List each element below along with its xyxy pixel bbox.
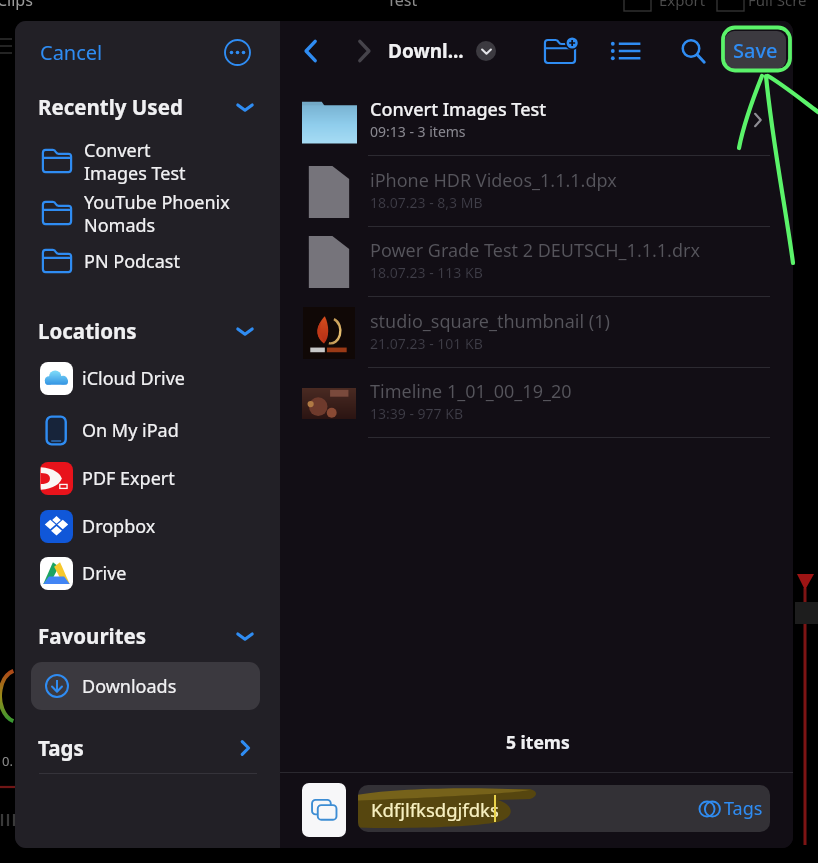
staticText: 18.07.23 - 8,3 MB bbox=[370, 193, 483, 212]
staticText: Tags bbox=[38, 734, 84, 762]
staticText: Downloads bbox=[82, 674, 177, 699]
staticText: PDF Expert bbox=[82, 466, 175, 491]
button[interactable]: iPhone HDR Videos_1.1.1.dpx bbox=[280, 157, 793, 227]
button[interactable]: Downloads bbox=[31, 662, 260, 710]
button[interactable]: New folder bbox=[539, 30, 581, 72]
button[interactable]: Convert Images Test bbox=[15, 136, 280, 186]
staticText: 0. bbox=[2, 752, 13, 770]
staticText: Drive bbox=[82, 561, 127, 586]
staticText: 13:39 - 977 KB bbox=[370, 404, 464, 423]
staticText: iCloud Drive bbox=[82, 366, 185, 391]
button[interactable]: Save bbox=[725, 31, 786, 69]
staticText: Kdfjlfksdgjfdks bbox=[371, 797, 499, 822]
staticText: Full Scre bbox=[748, 0, 807, 10]
staticText: iPhone HDR Videos_1.1.1.dpx bbox=[370, 168, 617, 193]
button[interactable]: iCloud Drive bbox=[15, 357, 280, 399]
button[interactable]: Favourites bbox=[15, 615, 280, 657]
button[interactable]: Cancel bbox=[35, 35, 108, 69]
staticText: Power Grade Test 2 DEUTSCH_1.1.1.drx bbox=[370, 238, 700, 263]
button[interactable]: Timeline 1_01_00_19_20 bbox=[280, 368, 793, 438]
staticText: PN Podcast bbox=[84, 249, 180, 274]
staticText: YouTube Phoenix Nomads bbox=[84, 190, 230, 237]
button[interactable]: Forward bbox=[344, 31, 384, 71]
button[interactable]: Back bbox=[290, 31, 330, 71]
button[interactable]: Search bbox=[672, 30, 714, 72]
staticText: Favourites bbox=[38, 622, 147, 650]
staticText: Recently Used bbox=[38, 93, 183, 121]
staticText: Test bbox=[387, 0, 418, 11]
staticText: Tags bbox=[724, 796, 763, 821]
button[interactable]: Duplicate bbox=[302, 783, 346, 837]
staticText: Locations bbox=[38, 317, 137, 345]
staticText: 18.07.23 - 113 KB bbox=[370, 263, 483, 282]
staticText: Save bbox=[733, 37, 778, 64]
button[interactable]: Recently Used bbox=[15, 86, 280, 128]
staticText: 09:13 - 3 items bbox=[370, 122, 466, 141]
staticText: Export bbox=[659, 0, 706, 10]
button[interactable]: On My iPad bbox=[15, 409, 280, 451]
button[interactable]: Dropbox bbox=[15, 505, 280, 547]
staticText: Timeline 1_01_00_19_20 bbox=[370, 379, 572, 404]
button[interactable]: Power Grade Test 2 DEUTSCH_1.1.1.drx bbox=[280, 227, 793, 297]
button[interactable]: List view bbox=[605, 30, 647, 72]
button[interactable]: Convert Images Test bbox=[280, 86, 793, 156]
staticText: On My iPad bbox=[82, 418, 179, 443]
button[interactable]: PDF Expert bbox=[15, 457, 280, 499]
button[interactable]: Drive bbox=[15, 552, 280, 594]
button[interactable]: YouTube Phoenix Nomads bbox=[15, 188, 280, 238]
staticText: Clips bbox=[0, 0, 33, 11]
staticText: Dropbox bbox=[82, 514, 156, 539]
button[interactable]: Folder options bbox=[476, 41, 496, 61]
staticText: studio_square_thumbnail (1) bbox=[370, 309, 610, 334]
button[interactable]: studio_square_thumbnail (1) bbox=[280, 298, 793, 368]
button[interactable]: More options bbox=[224, 39, 251, 66]
staticText: Downl... bbox=[388, 38, 464, 64]
button[interactable]: PN Podcast bbox=[15, 245, 280, 277]
staticText: 21.07.23 - 101 KB bbox=[370, 334, 483, 353]
button[interactable]: Locations bbox=[15, 310, 280, 352]
button[interactable]: Tags bbox=[15, 727, 280, 769]
staticText: Convert Images Test bbox=[84, 138, 186, 185]
staticText: 5 items bbox=[506, 730, 570, 752]
staticText: Cancel bbox=[40, 39, 103, 66]
staticText: Convert Images Test bbox=[370, 97, 547, 122]
button[interactable]: Downl... bbox=[388, 35, 464, 67]
button[interactable]: Kdfjlfksdgjfdks bbox=[358, 785, 770, 832]
